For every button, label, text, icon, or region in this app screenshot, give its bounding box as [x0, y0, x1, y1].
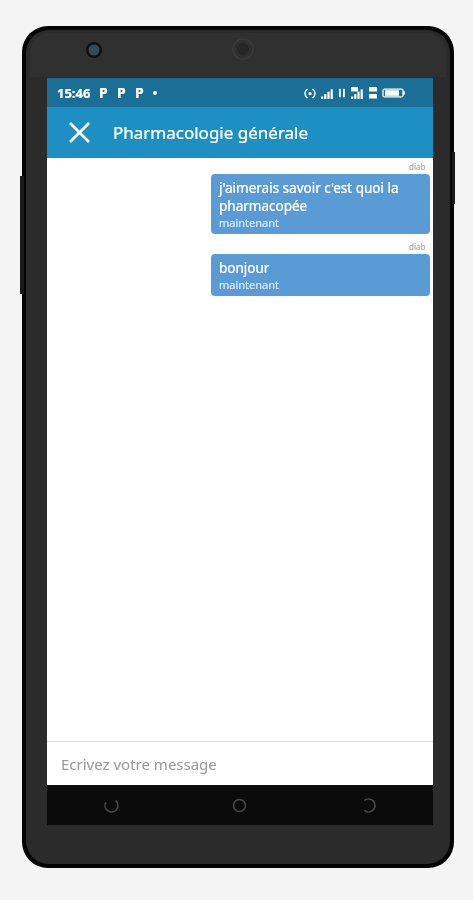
staticText: pharmacopée — [219, 197, 308, 215]
staticText: P — [117, 83, 126, 102]
button[interactable]: Home — [175, 785, 304, 825]
button[interactable]: Recents — [304, 785, 433, 825]
button[interactable]: Close — [55, 107, 103, 158]
staticText: P — [135, 83, 144, 102]
staticText: bonjour — [219, 259, 270, 277]
button[interactable]: Back — [47, 785, 175, 825]
button[interactable]: j'aimerais savoir c'est quoi la — [211, 174, 430, 234]
staticText: Ecrivez votre message — [61, 754, 217, 774]
button[interactable]: Ecrivez votre message — [47, 742, 433, 785]
staticText: diab — [409, 241, 426, 252]
staticText: P — [99, 83, 108, 102]
button[interactable]: bonjour — [211, 254, 430, 296]
staticText: maintenant — [219, 215, 280, 230]
staticText: Pharmacologie générale — [113, 121, 309, 144]
staticText: maintenant — [219, 277, 280, 292]
staticText: diab — [409, 161, 426, 172]
staticText: j'aimerais savoir c'est quoi la — [219, 179, 399, 197]
staticText: 15:46 — [57, 84, 91, 102]
